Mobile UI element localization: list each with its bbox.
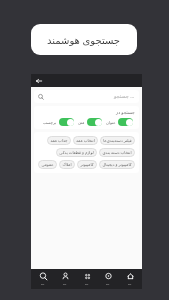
button[interactable]: لوازم و قطعات یدکی xyxy=(56,148,97,157)
button[interactable]: جستجوی هوشمند xyxy=(31,24,137,55)
button[interactable]: Search xyxy=(34,90,139,103)
staticText: انتخاب دسته بندی xyxy=(102,150,132,155)
staticText: کامپیوتر و دیجیتال xyxy=(102,162,132,167)
button[interactable]: املاک xyxy=(59,160,75,169)
button[interactable]: انتخاب همه xyxy=(73,136,98,145)
staticText: انتخاب همه xyxy=(76,138,95,143)
button[interactable]: Back xyxy=(34,76,43,85)
staticText: لوازم و قطعات یدکی xyxy=(59,150,94,155)
button[interactable]: کامپیوتر و دیجیتال xyxy=(99,160,135,169)
staticText: املاک xyxy=(62,162,72,167)
button[interactable]: فیلتر دسته‌بندی‌ها xyxy=(100,136,135,145)
button[interactable]: برچسب xyxy=(41,118,76,126)
button[interactable]: Search xyxy=(33,269,53,289)
staticText: جذاب همه xyxy=(50,138,68,143)
staticText: جستجو ... xyxy=(114,93,135,100)
button[interactable]: Profile xyxy=(55,269,75,289)
staticText: برچسب xyxy=(43,120,57,125)
staticText: کامپیوتر xyxy=(80,162,94,167)
staticText: عنوان xyxy=(106,120,116,125)
button[interactable]: عنوان xyxy=(104,118,135,126)
button[interactable]: عمومی xyxy=(38,160,57,169)
staticText: جستجوی هوشمند xyxy=(47,33,121,47)
button[interactable]: انتخاب دسته بندی xyxy=(99,148,135,157)
staticText: ••• xyxy=(128,283,132,287)
staticText: جستجو در xyxy=(116,109,135,115)
other: Search xyxy=(38,94,44,100)
button[interactable]: جذاب همه xyxy=(47,136,71,145)
staticText: عمومی xyxy=(41,162,54,167)
button[interactable]: متن xyxy=(76,118,104,126)
staticText: فیلتر دسته‌بندی‌ها xyxy=(103,138,132,143)
staticText: متن xyxy=(78,120,85,125)
staticText: ••• xyxy=(85,283,89,287)
button[interactable]: Notifications xyxy=(98,269,118,289)
button[interactable]: Home xyxy=(120,269,140,289)
staticText: ••• xyxy=(41,283,45,287)
staticText: ••• xyxy=(63,283,67,287)
button[interactable]: Categories xyxy=(77,269,97,289)
staticText: ••• xyxy=(106,283,110,287)
button[interactable]: کامپیوتر xyxy=(77,160,97,169)
